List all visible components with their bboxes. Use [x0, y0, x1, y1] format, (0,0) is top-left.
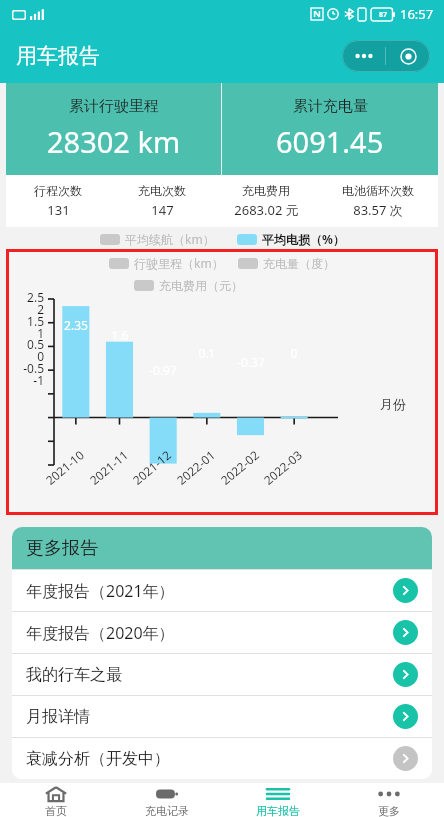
staticText: 2.5 — [10, 289, 44, 305]
staticText: 累计行驶里程 — [69, 97, 159, 116]
staticText: 2683.02 元 — [234, 201, 299, 219]
staticText: 2022-02 — [217, 446, 263, 488]
staticText: 0.5 — [10, 336, 44, 352]
button[interactable]: 行程次数 — [6, 183, 110, 219]
staticText: 更多 — [378, 804, 400, 817]
button[interactable]: More options — [342, 40, 430, 72]
staticText: 2022-01 — [173, 446, 219, 488]
staticText: 月报详情 — [26, 707, 393, 727]
button[interactable]: 充电记录 — [111, 783, 222, 817]
staticText: -0.97 — [147, 362, 179, 378]
staticText: 2022-03 — [260, 446, 306, 488]
staticText: 电池循环次数 — [342, 183, 414, 198]
button[interactable]: 更多 — [333, 783, 444, 817]
staticText: 更多报告 — [26, 537, 98, 560]
button[interactable]: 月报详情 — [12, 696, 432, 737]
staticText: 我的行车之最 — [26, 665, 393, 685]
staticText: 用车报告 — [16, 43, 100, 69]
staticText: 用车报告 — [256, 804, 300, 817]
button[interactable]: 累计充电量 — [222, 83, 438, 175]
staticText: 28302 km — [47, 122, 181, 161]
button[interactable]: 衰减分析（开发中） — [12, 738, 432, 779]
staticText: 16:57 — [400, 5, 434, 23]
button[interactable]: 充电量（度） — [238, 256, 335, 271]
staticText: -1 — [10, 372, 44, 388]
staticText: 2.35 — [60, 317, 92, 333]
button[interactable]: 年度报告（2020年） — [12, 612, 432, 653]
button[interactable]: 行驶里程（km） — [109, 255, 224, 271]
staticText: 131 — [47, 201, 70, 219]
button[interactable]: 平均续航（km） — [100, 231, 215, 247]
staticText: 0 — [10, 348, 44, 364]
button[interactable]: 电池循环次数 — [318, 183, 438, 219]
staticText: 充电次数 — [138, 183, 186, 198]
button[interactable]: 我的行车之最 — [12, 654, 432, 695]
staticText: 1.5 — [10, 313, 44, 329]
staticText: 充电费用（元） — [159, 278, 243, 293]
staticText: 年度报告（2021年） — [26, 580, 393, 602]
staticText: 累计充电量 — [293, 97, 368, 116]
staticText: 首页 — [45, 804, 67, 817]
staticText: 2021-12 — [129, 446, 175, 488]
staticText: 83.57 次 — [353, 201, 403, 219]
staticText: 充电量（度） — [263, 256, 335, 271]
button[interactable]: 年度报告（2021年） — [12, 570, 432, 611]
staticText: 147 — [151, 201, 174, 219]
staticText: 2021-11 — [86, 446, 132, 488]
staticText: 年度报告（2020年） — [26, 622, 393, 644]
staticText: 1.6 — [104, 327, 136, 343]
staticText: 充电费用 — [242, 183, 290, 198]
staticText: 2 — [10, 301, 44, 317]
staticText: -0.5 — [10, 360, 44, 376]
staticText: 充电记录 — [145, 804, 189, 817]
button[interactable]: 充电次数 — [110, 183, 214, 219]
button[interactable]: 用车报告 — [222, 783, 333, 817]
staticText: 平均电损（%） — [262, 231, 345, 247]
button[interactable]: 首页 — [0, 783, 111, 817]
staticText: 月份 — [380, 396, 406, 412]
staticText: 2021-10 — [42, 446, 88, 488]
button[interactable]: 充电费用（元） — [134, 278, 243, 293]
staticText: 1 — [10, 325, 44, 341]
button[interactable]: 充电费用 — [214, 183, 318, 219]
staticText: 平均续航（km） — [125, 231, 215, 247]
button[interactable]: 累计行驶里程 — [6, 83, 221, 175]
staticText: 6091.45 — [276, 122, 384, 161]
staticText: 87 — [379, 10, 388, 20]
staticText: 衰减分析（开发中） — [26, 749, 393, 769]
button[interactable]: 平均电损（%） — [237, 231, 345, 247]
staticText: 行驶里程（km） — [134, 255, 224, 271]
staticText: -0.37 — [235, 354, 267, 370]
staticText: 行程次数 — [34, 183, 82, 198]
